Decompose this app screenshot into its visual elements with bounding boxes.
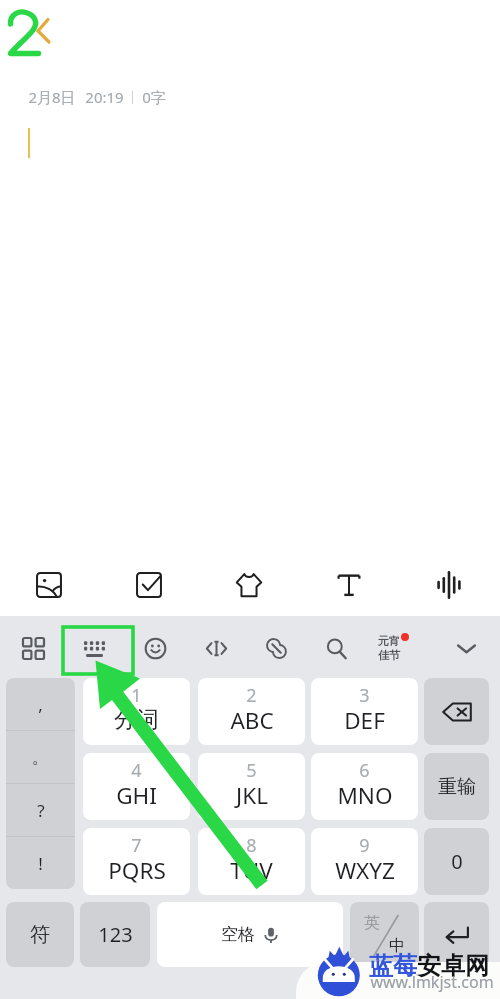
button[interactable]: search [312, 624, 360, 672]
staticText: 123 [98, 921, 133, 948]
button[interactable]: Enter [424, 902, 489, 967]
button[interactable]: Back [18, 11, 58, 51]
staticText: 3 [359, 683, 370, 708]
button[interactable]: 6 [311, 753, 418, 820]
button[interactable]: check [100, 555, 200, 616]
staticText: ! [38, 852, 43, 875]
staticText: 安卓网 [417, 951, 489, 981]
button[interactable]: grid [9, 624, 57, 672]
button[interactable]: 英 [350, 902, 419, 967]
staticText: 1 [131, 683, 142, 708]
staticText: 9 [359, 833, 370, 858]
button[interactable]: text [300, 555, 400, 616]
staticText: 分词 [114, 705, 159, 733]
button[interactable]: 123 [80, 902, 150, 967]
staticText: 4 [131, 758, 142, 783]
staticText: 2月8日 [28, 87, 76, 107]
staticText: ? [37, 799, 45, 822]
staticText: 元宵 [378, 634, 400, 648]
button[interactable]: down [442, 624, 490, 672]
staticText: 7 [131, 833, 142, 858]
button[interactable]: 。 [6, 731, 75, 783]
staticText: MNO [337, 780, 393, 811]
staticText: 0字 [142, 87, 166, 107]
button[interactable]: ? [6, 784, 75, 836]
button[interactable]: 8 [198, 828, 305, 895]
staticText: 中 [389, 936, 405, 956]
button[interactable]: 1 [83, 678, 190, 745]
button[interactable]: shirt [200, 555, 300, 616]
staticText: 6 [359, 758, 370, 783]
button[interactable]: 2 [198, 678, 305, 745]
button[interactable]: voice [400, 555, 500, 616]
staticText: PQRS [108, 855, 166, 886]
button[interactable]: 4 [83, 753, 190, 820]
staticText: 重输 [438, 775, 476, 799]
other: Backspace [442, 697, 472, 727]
staticText: 8 [246, 833, 257, 858]
staticText: 。 [32, 747, 49, 768]
staticText: GHI [116, 780, 157, 811]
button[interactable]: 空格 [157, 902, 343, 967]
staticText: 5 [246, 758, 257, 783]
staticText: www.lmkjst.com [370, 971, 494, 993]
staticText: 符 [30, 922, 50, 947]
staticText: 2 [246, 683, 257, 708]
button[interactable]: keyboard [70, 624, 118, 672]
button[interactable]: 3 [311, 678, 418, 745]
button[interactable]: 重输 [424, 753, 489, 820]
button[interactable]: cursor [192, 624, 240, 672]
staticText: 佳节 [378, 648, 400, 662]
staticText: , [38, 693, 43, 716]
button[interactable]: ! [6, 837, 75, 889]
staticText: 英 [364, 913, 380, 933]
staticText: 0 [451, 848, 463, 875]
button[interactable]: 7 [83, 828, 190, 895]
button[interactable]: image [0, 555, 100, 616]
staticText: WXYZ [335, 855, 395, 886]
staticText: JKL [236, 780, 268, 811]
staticText: 空格 [221, 924, 255, 945]
button[interactable]: festival [365, 624, 413, 672]
button[interactable]: 0 [424, 828, 489, 895]
button[interactable]: 9 [311, 828, 418, 895]
button[interactable]: 5 [198, 753, 305, 820]
button[interactable]: emoji [131, 624, 179, 672]
button[interactable]: 符 [6, 902, 74, 967]
staticText: TUV [230, 855, 273, 886]
staticText: DEF [344, 705, 385, 736]
staticText: ABC [230, 705, 274, 736]
other: Enter [444, 922, 470, 948]
button[interactable]: , [6, 678, 75, 730]
staticText: 蓝莓 [369, 951, 417, 981]
button[interactable]: Backspace [424, 678, 489, 745]
button[interactable]: link [252, 624, 300, 672]
staticText: 20:19 [85, 87, 124, 107]
